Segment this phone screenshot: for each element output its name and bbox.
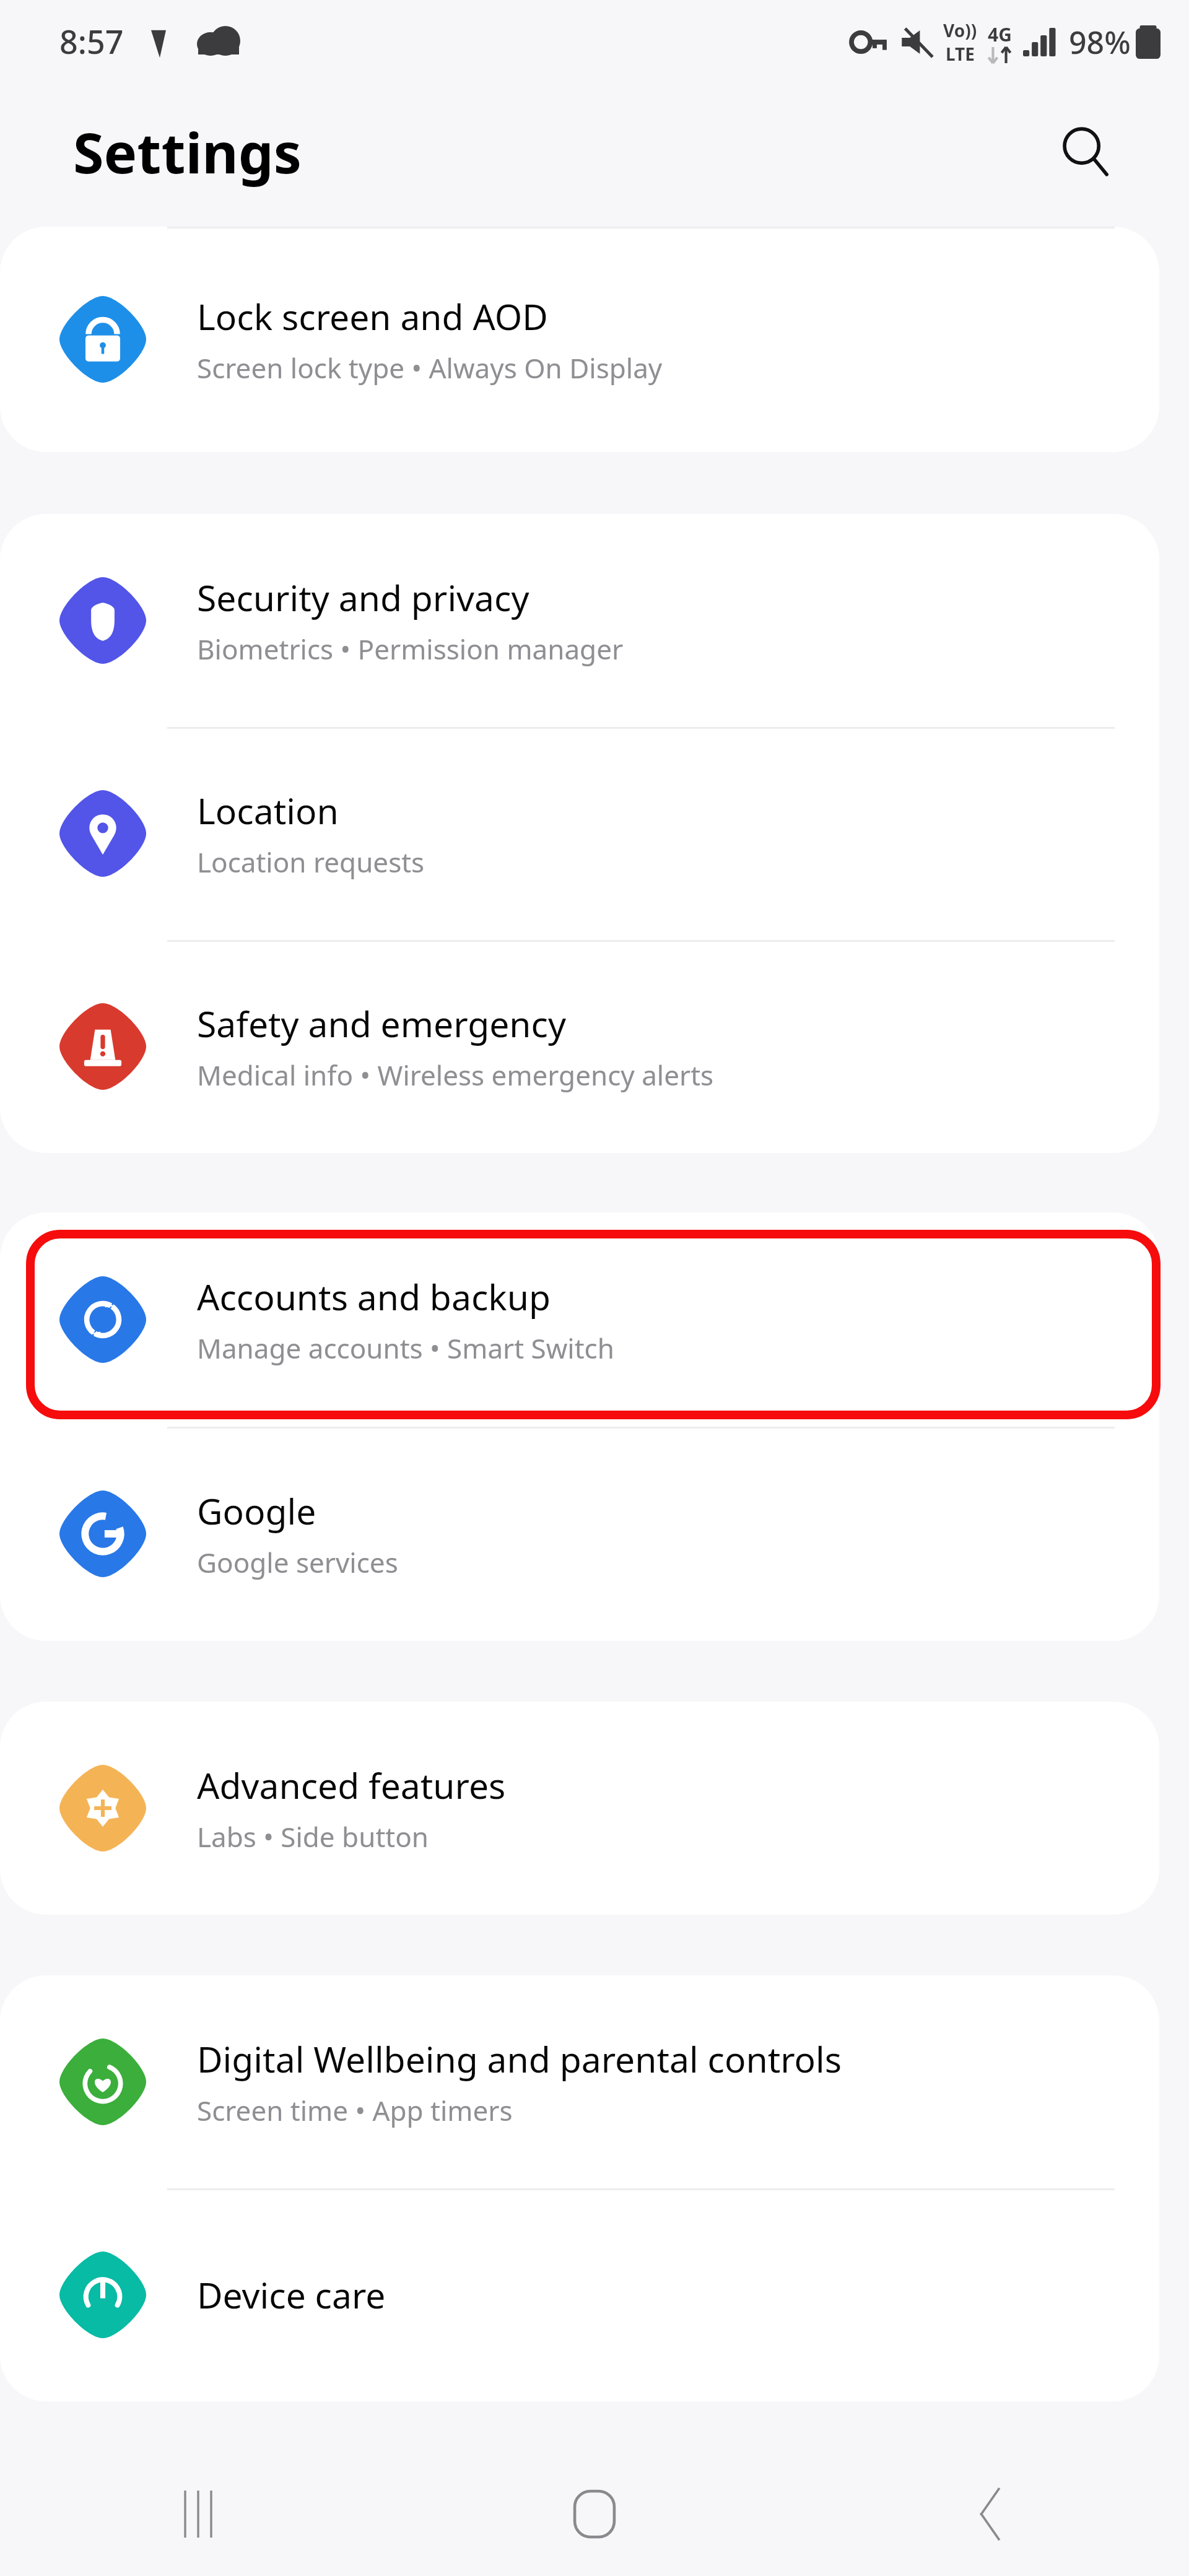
button[interactable]: Back [793, 2452, 1189, 2576]
staticText: Location requests [197, 843, 425, 881]
staticText: 98% [1069, 21, 1131, 63]
staticText: Security and privacy [197, 573, 529, 622]
staticText: Medical info • Wireless emergency alerts [197, 1056, 714, 1094]
button[interactable]: Security and privacy [0, 514, 1159, 727]
staticText: LTE [946, 42, 975, 66]
button[interactable]: Google [0, 1427, 1159, 1641]
staticText: Google services [197, 1544, 398, 1581]
staticText: Advanced features [197, 1761, 506, 1809]
staticText: Biometrics • Permission manager [197, 630, 624, 668]
button[interactable]: Search [1049, 115, 1123, 189]
staticText: Google [197, 1487, 316, 1535]
staticText: Vo)) [943, 19, 977, 42]
button[interactable]: Home [396, 2452, 793, 2576]
staticText: Location [197, 786, 339, 835]
button[interactable]: Digital Wellbeing and parental controls [0, 1975, 1159, 2188]
button[interactable]: Device care [0, 2188, 1159, 2401]
button[interactable]: Recent apps [0, 2452, 396, 2576]
button[interactable]: Location [0, 727, 1159, 940]
staticText: Settings [73, 114, 302, 190]
button[interactable]: Safety and emergency [0, 940, 1159, 1153]
button[interactable]: Accounts and backup [0, 1212, 1159, 1427]
staticText: Manage accounts • Smart Switch [197, 1329, 614, 1367]
staticText: Device care [197, 2271, 386, 2319]
staticText: Screen time • App timers [197, 2092, 513, 2129]
staticText: Safety and emergency [197, 999, 566, 1048]
staticText: 4G [988, 22, 1012, 47]
staticText: Labs • Side button [197, 1818, 429, 1855]
staticText: Accounts and backup [197, 1273, 551, 1321]
staticText: Digital Wellbeing and parental controls [197, 2035, 842, 2083]
button[interactable]: Lock screen and AOD [0, 227, 1159, 452]
staticText: 8:57 [59, 19, 124, 63]
staticText: Lock screen and AOD [197, 292, 548, 341]
staticText: Screen lock type • Always On Display [197, 349, 663, 386]
button[interactable]: Advanced features [0, 1702, 1159, 1915]
